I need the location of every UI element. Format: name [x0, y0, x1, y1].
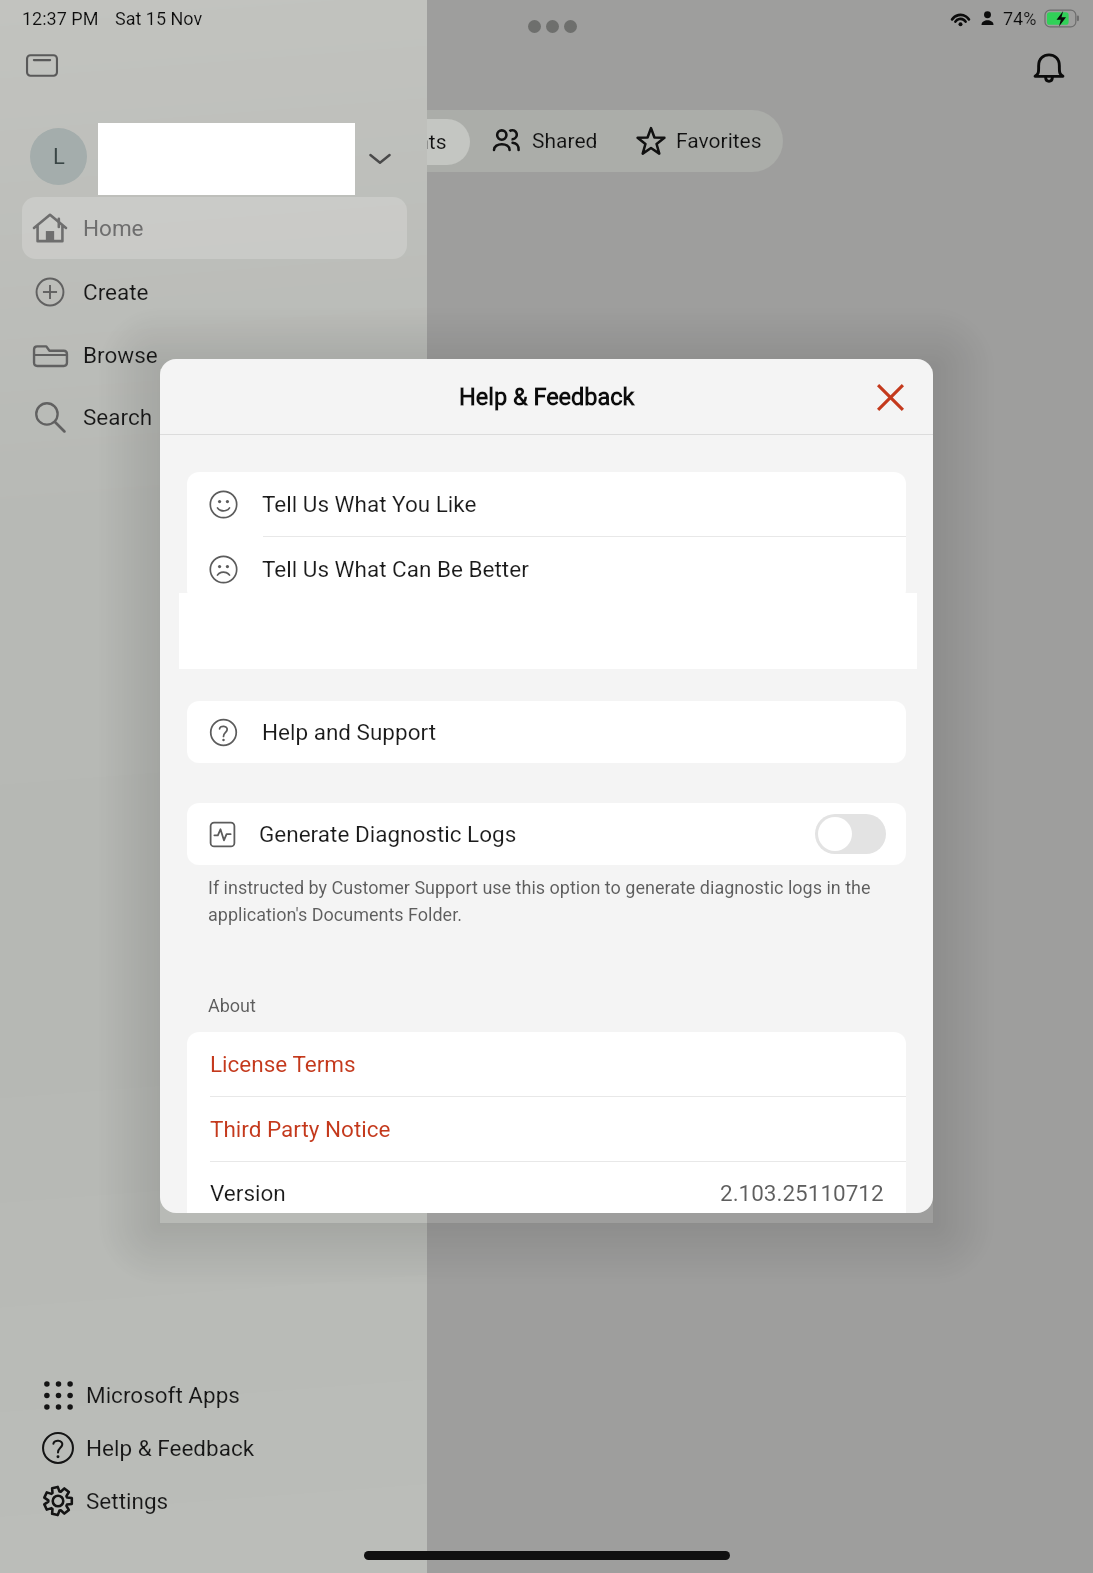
- staticText: 2.103.25110712: [720, 1180, 884, 1206]
- staticText: Tell Us What Can Be Better: [262, 556, 529, 582]
- staticText: Settings: [86, 1488, 169, 1514]
- staticText: Favorites: [676, 129, 762, 154]
- button[interactable]: Search: [0, 389, 415, 445]
- staticText: Search: [83, 404, 153, 430]
- button[interactable]: Create: [0, 264, 415, 320]
- button[interactable]: Toggle navigation drawer: [14, 37, 70, 93]
- button[interactable]: License Terms: [187, 1032, 906, 1096]
- button[interactable]: Generate Diagnostic Logs: [187, 803, 906, 865]
- staticText: L: [53, 144, 65, 170]
- button[interactable]: Third Party Notice: [187, 1097, 906, 1161]
- staticText: Home: [83, 215, 144, 241]
- staticText: Generate Diagnostic Logs: [259, 821, 517, 847]
- staticText: Third Party Notice: [210, 1116, 391, 1142]
- staticText: About: [208, 995, 256, 1016]
- button[interactable]: L: [30, 128, 87, 185]
- button[interactable]: Tell Us What You Like: [187, 472, 906, 536]
- button[interactable]: Favorites: [630, 110, 778, 172]
- button[interactable]: Microsoft Apps: [0, 1367, 415, 1423]
- button[interactable]: Help and Support: [187, 701, 906, 763]
- button[interactable]: Generate Diagnostic Logs toggle: [815, 814, 886, 854]
- button[interactable]: Recents: [250, 119, 470, 165]
- staticText: License Terms: [210, 1051, 356, 1077]
- button[interactable]: Switch account: [362, 140, 398, 176]
- button[interactable]: Shared: [482, 110, 600, 172]
- button[interactable]: Tell Us What Can Be Better: [187, 537, 906, 601]
- staticText: Create: [83, 279, 149, 305]
- staticText: Help & Feedback: [459, 383, 635, 411]
- staticText: Version: [210, 1180, 286, 1206]
- staticText: Browse: [83, 342, 158, 368]
- staticText: Recents: [371, 130, 447, 155]
- staticText: 12:37 PM: [22, 8, 99, 29]
- button[interactable]: Home: [0, 200, 415, 256]
- button[interactable]: [22, 197, 407, 259]
- staticText: Microsoft Apps: [86, 1382, 240, 1408]
- button[interactable]: Notifications: [1021, 40, 1077, 96]
- staticText: Shared: [532, 129, 598, 154]
- staticText: Tell Us What You Like: [262, 491, 477, 517]
- staticText: Sat 15 Nov: [115, 8, 203, 29]
- button[interactable]: Close: [865, 372, 915, 422]
- button[interactable]: Help & Feedback: [0, 1420, 415, 1476]
- staticText: 74%: [1003, 8, 1037, 29]
- button[interactable]: Settings: [0, 1473, 415, 1529]
- staticText: Help and Support: [262, 719, 437, 745]
- staticText: If instructed by Customer Support use th…: [208, 877, 895, 925]
- staticText: Help & Feedback: [86, 1435, 255, 1461]
- button[interactable]: Browse: [0, 327, 415, 383]
